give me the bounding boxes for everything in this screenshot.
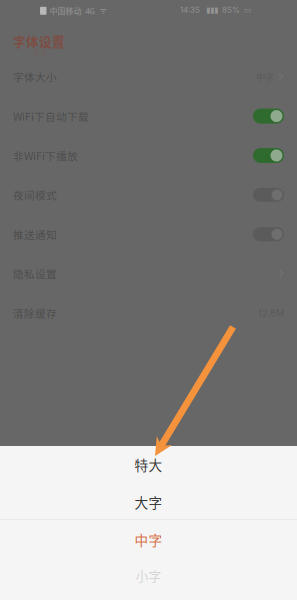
button[interactable]: 中字 — [0, 521, 297, 558]
button[interactable]: WiFi下自动下载 — [0, 96, 297, 136]
button[interactable]: 清除缓存 — [0, 293, 297, 333]
staticText: 字体设置 — [13, 32, 65, 50]
staticText: 14:35 ▮▮▮ 85% ▭ — [180, 5, 252, 15]
button[interactable]: 推送通知 — [0, 215, 297, 254]
staticText: 小字 — [135, 566, 161, 585]
staticText: 清除缓存 — [13, 305, 57, 321]
staticText: 大字 — [134, 492, 162, 512]
button[interactable]: 非WiFi下播放 — [0, 136, 297, 175]
staticText: 非WiFi下播放 — [13, 148, 78, 163]
staticText: WiFi下自动下载 — [13, 108, 89, 124]
staticText: 特大 — [134, 455, 162, 474]
staticText: 12.6M — [258, 307, 284, 319]
staticText: 中字 — [134, 530, 162, 549]
staticText: 隐私设置 — [13, 266, 57, 281]
staticText: 常规 — [33, 48, 47, 58]
staticText: 夜间模式 — [13, 187, 57, 203]
button[interactable]: 特大 — [0, 446, 297, 483]
staticText: 推送通知 — [13, 227, 57, 242]
staticText: 中国移动 4G ᯤ — [49, 5, 106, 17]
staticText: 中字 — [256, 70, 274, 83]
button[interactable]: 大字 — [0, 483, 297, 520]
staticText: 字体大小 — [13, 69, 57, 84]
